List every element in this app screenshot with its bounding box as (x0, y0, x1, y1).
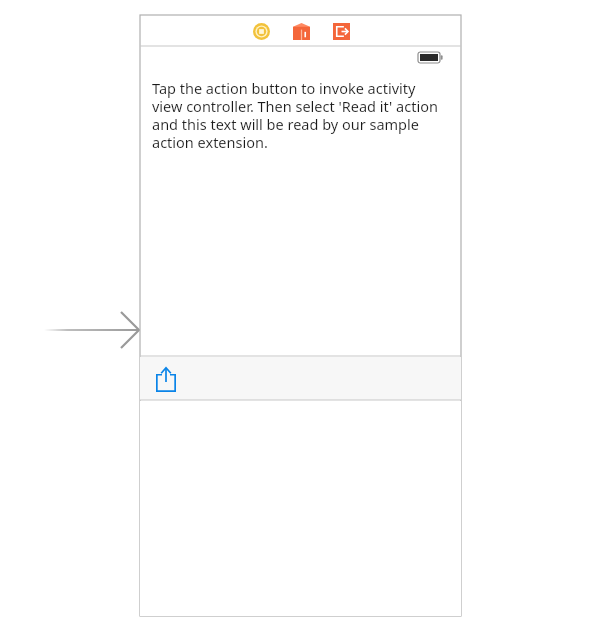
button[interactable]: Share (151, 364, 181, 394)
button[interactable]: Package (290, 20, 312, 42)
staticText: Tap the action button to invoke activity… (152, 78, 447, 152)
button[interactable]: Export (330, 20, 352, 42)
button[interactable]: Simulator (250, 20, 272, 42)
